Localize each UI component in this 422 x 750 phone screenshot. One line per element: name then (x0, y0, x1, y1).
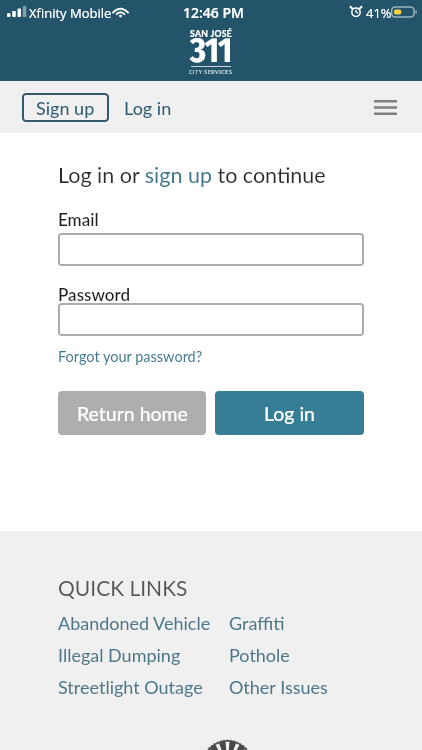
staticText: CITY SERVICES (189, 69, 233, 75)
button[interactable]: Pothole (229, 644, 290, 666)
button[interactable]: Menu (363, 85, 407, 129)
staticText: Graffiti (229, 612, 285, 634)
button[interactable]: Abandoned Vehicle (58, 612, 211, 634)
staticText: Abandoned Vehicle (58, 612, 211, 634)
staticText: Pothole (229, 644, 290, 666)
staticText: Xfinity Mobile (29, 4, 112, 22)
staticText: Email (58, 209, 99, 229)
staticText: Streetlight Outage (58, 676, 203, 698)
button[interactable]: Sign up (22, 93, 109, 122)
staticText: Sign up (36, 97, 95, 119)
staticText: Log in (124, 97, 172, 119)
staticText: Illegal Dumping (58, 644, 181, 666)
staticText: SAN JOSÉ (190, 28, 233, 38)
button[interactable]: Streetlight Outage (58, 676, 203, 698)
button[interactable]: Log in (215, 391, 364, 435)
button[interactable]: Illegal Dumping (58, 644, 181, 666)
staticText: Log in or sign up to continue (58, 162, 326, 188)
staticText: QUICK LINKS (58, 575, 188, 600)
button[interactable]: Other Issues (229, 676, 328, 698)
staticText: 311 (190, 30, 232, 71)
staticText: Forgot your password? (58, 348, 203, 365)
staticText: 41% (366, 4, 392, 22)
staticText: 12:46 PM (183, 3, 244, 22)
button[interactable] (58, 233, 364, 266)
staticText: Log in (264, 402, 316, 425)
staticText: Return home (77, 402, 188, 425)
button[interactable]: Graffiti (229, 612, 285, 634)
button[interactable] (58, 303, 364, 336)
staticText: Password (58, 284, 131, 304)
button[interactable]: Forgot your password? (58, 348, 203, 365)
staticText: Other Issues (229, 676, 328, 698)
button[interactable]: Log in (117, 93, 178, 122)
button[interactable]: Return home (58, 391, 206, 435)
